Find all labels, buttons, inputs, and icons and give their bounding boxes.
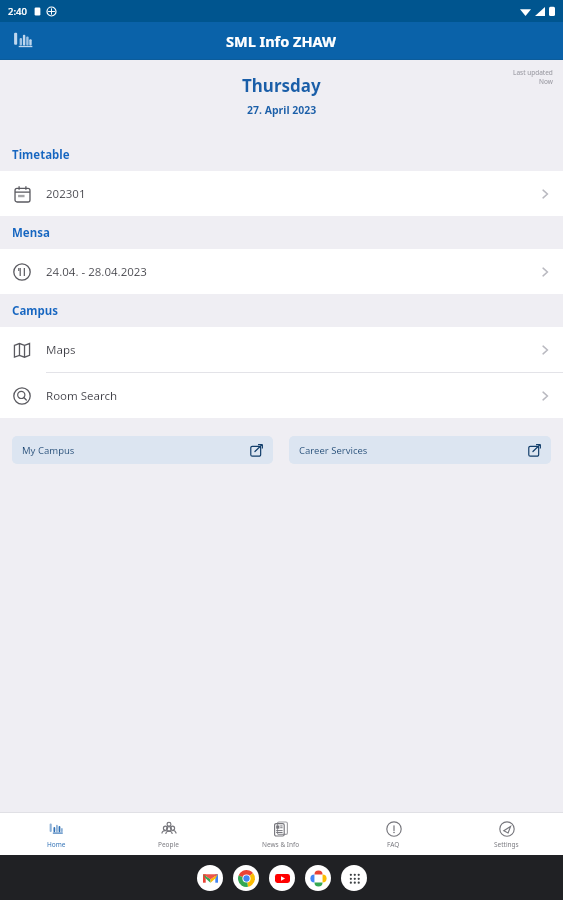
staticText: 2:40 bbox=[8, 5, 27, 18]
button[interactable]: App bbox=[233, 865, 259, 891]
button[interactable]: Maps bbox=[0, 327, 563, 372]
staticText: Campus bbox=[12, 303, 58, 319]
staticText: 24.04. - 28.04.2023 bbox=[46, 264, 147, 280]
staticText: Career Services bbox=[299, 444, 368, 457]
staticText: Home bbox=[47, 840, 66, 849]
staticText: Mensa bbox=[12, 225, 50, 241]
button[interactable]: App bbox=[305, 865, 331, 891]
staticText: FAQ bbox=[387, 840, 400, 849]
staticText: Room Search bbox=[46, 388, 118, 404]
button[interactable]: 202301 bbox=[0, 171, 563, 216]
staticText: SML Info ZHAW bbox=[226, 31, 337, 51]
button[interactable]: App bbox=[269, 865, 295, 891]
button[interactable]: 24.04. - 28.04.2023 bbox=[0, 249, 563, 294]
staticText: Settings bbox=[494, 840, 519, 849]
button[interactable]: People bbox=[112, 813, 224, 855]
staticText: Maps bbox=[46, 342, 76, 358]
staticText: Timetable bbox=[12, 147, 70, 163]
button[interactable]: App bbox=[341, 865, 367, 891]
staticText: 202301 bbox=[46, 186, 86, 202]
button[interactable]: Room Search bbox=[0, 373, 563, 418]
staticText: My Campus bbox=[22, 444, 75, 457]
staticText: People bbox=[158, 840, 179, 849]
button[interactable]: FAQ bbox=[337, 813, 450, 855]
staticText: News & Info bbox=[262, 840, 300, 849]
button[interactable]: App logo bbox=[10, 27, 38, 55]
button[interactable]: App bbox=[197, 865, 223, 891]
button[interactable]: Settings bbox=[450, 813, 563, 855]
button[interactable]: Career Services bbox=[289, 436, 551, 464]
button[interactable]: News & Info bbox=[224, 813, 337, 855]
button[interactable]: My Campus bbox=[12, 436, 273, 464]
staticText: Now bbox=[539, 77, 553, 86]
staticText: 27. April 2023 bbox=[247, 103, 317, 117]
button[interactable]: Home bbox=[0, 813, 112, 855]
staticText: Thursday bbox=[242, 74, 321, 97]
staticText: Last updated bbox=[513, 68, 553, 77]
